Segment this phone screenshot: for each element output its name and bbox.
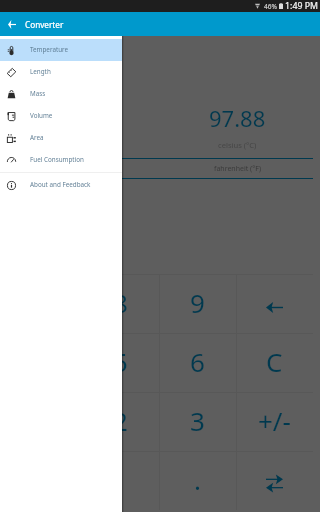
- staticText: Length: [30, 67, 51, 76]
- button[interactable]: Temperature: [0, 39, 122, 61]
- button[interactable]: 6: [159, 334, 236, 392]
- staticText: Temperature: [30, 45, 69, 54]
- staticText: Mass: [30, 89, 46, 98]
- button[interactable]: About and Feedback: [0, 174, 122, 196]
- button[interactable]: 5: [82, 334, 159, 392]
- button[interactable]: .: [159, 452, 236, 510]
- button[interactable]: [236, 452, 313, 510]
- staticText: 5: [113, 344, 128, 379]
- staticText: Area: [30, 133, 44, 142]
- staticText: .: [194, 462, 201, 497]
- button[interactable]: Mass: [0, 83, 122, 105]
- button[interactable]: 3: [159, 393, 236, 451]
- staticText: +/-: [258, 403, 291, 438]
- button[interactable]: 9: [159, 275, 236, 333]
- staticText: 46%: [264, 2, 278, 11]
- staticText: 9: [190, 285, 205, 320]
- staticText: 2: [113, 403, 128, 438]
- button[interactable]: 2: [82, 393, 159, 451]
- staticText: fahrenheit (°F): [214, 164, 262, 174]
- staticText: Converter: [25, 19, 64, 30]
- staticText: 1:49 PM: [285, 0, 319, 12]
- button[interactable]: +/-: [236, 393, 313, 451]
- button[interactable]: C: [236, 334, 313, 392]
- button[interactable]: Length: [0, 61, 122, 83]
- button[interactable]: 8: [82, 275, 159, 333]
- staticText: 6: [190, 344, 205, 379]
- button[interactable]: Area: [0, 127, 122, 149]
- staticText: celsius (°C): [218, 140, 257, 150]
- button[interactable]: Back: [0, 12, 23, 36]
- button[interactable]: [82, 452, 159, 510]
- staticText: 3: [190, 403, 205, 438]
- button[interactable]: [236, 275, 313, 333]
- staticText: C: [266, 344, 283, 379]
- staticText: Volume: [30, 111, 53, 120]
- button[interactable]: Volume: [0, 105, 122, 127]
- staticText: 97.88: [209, 103, 266, 133]
- staticText: About and Feedback: [30, 180, 91, 189]
- button[interactable]: Fuel Consumption: [0, 149, 122, 171]
- staticText: 8: [113, 285, 128, 320]
- staticText: Fuel Consumption: [30, 155, 84, 164]
